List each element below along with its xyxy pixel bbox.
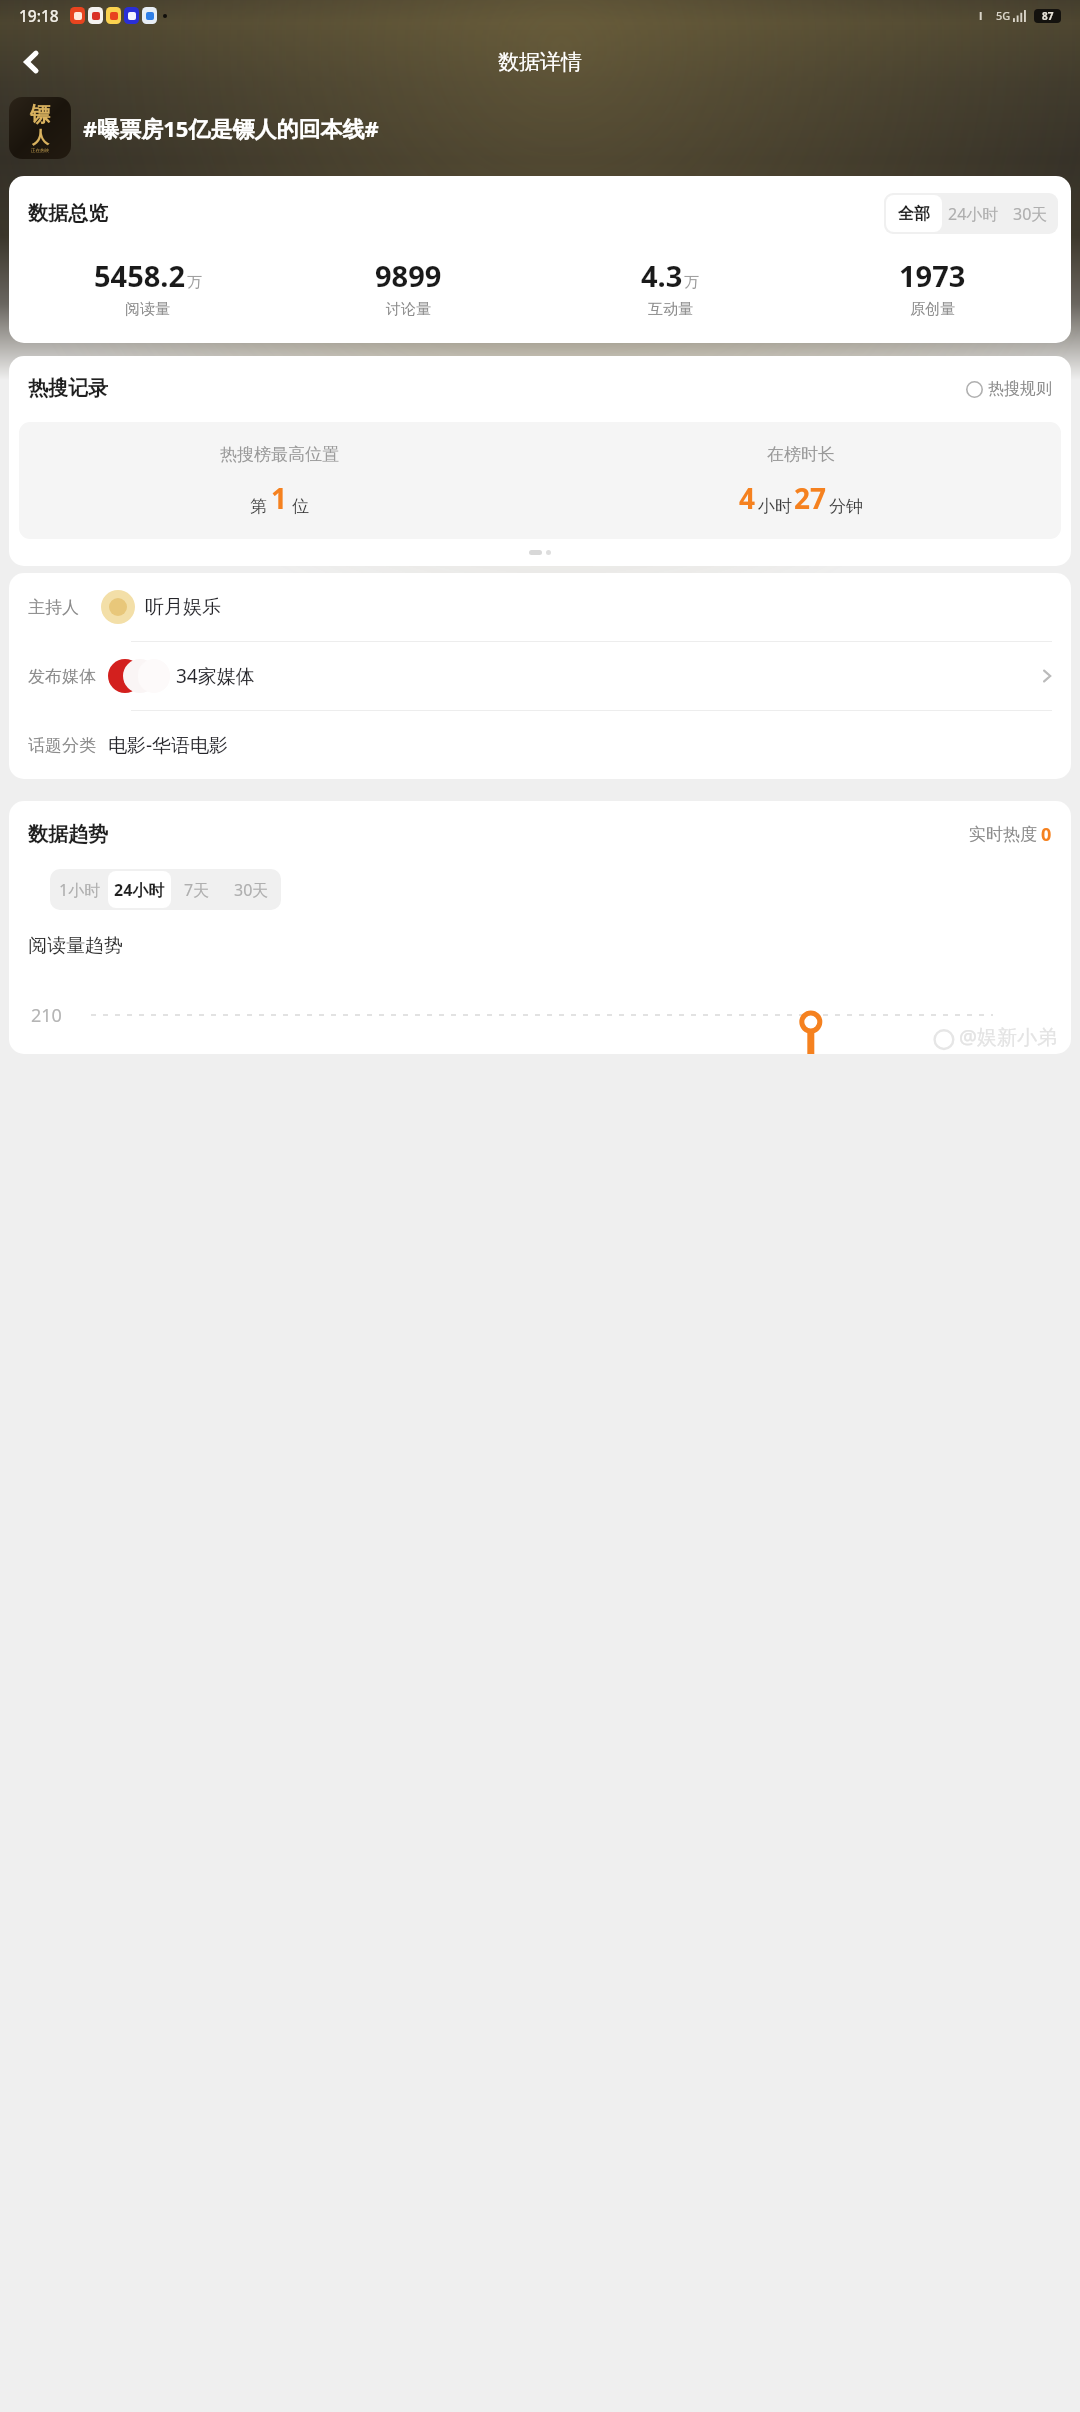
staticText: 电影-华语电影 xyxy=(108,732,229,758)
button[interactable]: 主持人 xyxy=(28,573,1052,641)
button[interactable]: 30天 xyxy=(223,871,279,908)
staticText: 87 xyxy=(1042,9,1054,23)
button[interactable]: 热搜规则 xyxy=(966,379,1052,399)
button[interactable]: Back xyxy=(6,36,58,88)
staticText: 27 xyxy=(794,479,827,517)
staticText: 数据总览 xyxy=(28,201,108,226)
staticText: 原创量 xyxy=(910,300,955,319)
staticText: 4 xyxy=(739,479,756,517)
staticText: 小时 xyxy=(758,496,792,517)
staticText: 5458.2 xyxy=(94,256,186,295)
staticText: 30天 xyxy=(234,879,269,901)
staticText: 第 xyxy=(250,496,267,517)
button[interactable]: 镖 xyxy=(9,93,1066,163)
staticText: 1小时 xyxy=(59,879,101,901)
button[interactable]: 24小时 xyxy=(942,195,1004,232)
staticText: 万 xyxy=(684,273,699,292)
button[interactable]: 24小时 xyxy=(108,871,171,908)
staticText: 实时热度 xyxy=(969,824,1037,845)
staticText: 19:18 xyxy=(19,5,59,26)
staticText: 阅读量趋势 xyxy=(28,934,123,958)
staticText: 5G xyxy=(996,8,1011,23)
staticText: 数据详情 xyxy=(498,49,582,75)
staticText: 1973 xyxy=(899,256,966,295)
staticText: 30天 xyxy=(1013,203,1048,225)
button[interactable]: 1小时 xyxy=(52,871,108,908)
staticText: 热搜榜最高位置 xyxy=(220,444,339,465)
staticText: @娱新小弟 xyxy=(959,1023,1057,1050)
staticText: 24小时 xyxy=(114,879,165,901)
staticText: 互动量 xyxy=(648,300,693,319)
staticText: 数据趋势 xyxy=(28,822,108,847)
staticText: 镖 xyxy=(30,102,50,127)
button[interactable]: 话题分类 xyxy=(28,711,1052,779)
button[interactable]: 30天 xyxy=(1004,195,1056,232)
staticText: 24小时 xyxy=(948,203,999,225)
staticText: 分钟 xyxy=(829,496,863,517)
staticText: 人 xyxy=(32,127,49,148)
staticText: 主持人 xyxy=(28,597,79,618)
staticText: 热搜规则 xyxy=(988,379,1052,399)
staticText: 9899 xyxy=(375,256,442,295)
staticText: 7天 xyxy=(184,879,210,901)
staticText: 在榜时长 xyxy=(767,444,835,465)
button[interactable]: 发布媒体 xyxy=(28,642,1055,710)
staticText: 正在热映 xyxy=(31,148,49,154)
staticText: 讨论量 xyxy=(386,300,431,319)
staticText: 34家媒体 xyxy=(176,663,255,689)
staticText: #曝票房15亿是镖人的回本线# xyxy=(83,113,379,143)
staticText: 阅读量 xyxy=(125,300,170,319)
staticText: 1 xyxy=(271,479,288,517)
staticText: 热搜记录 xyxy=(28,376,108,401)
staticText: 发布媒体 xyxy=(28,666,96,687)
button[interactable]: 全部 xyxy=(886,195,942,232)
staticText: 0 xyxy=(1041,822,1052,847)
staticText: 210 xyxy=(31,1003,62,1028)
staticText: 全部 xyxy=(898,204,930,224)
staticText: 4.3 xyxy=(641,256,683,295)
staticText: 话题分类 xyxy=(28,735,96,756)
staticText: 听月娱乐 xyxy=(145,595,221,619)
staticText: 万 xyxy=(187,273,202,292)
staticText: 位 xyxy=(292,496,309,517)
button[interactable]: 7天 xyxy=(171,871,223,908)
